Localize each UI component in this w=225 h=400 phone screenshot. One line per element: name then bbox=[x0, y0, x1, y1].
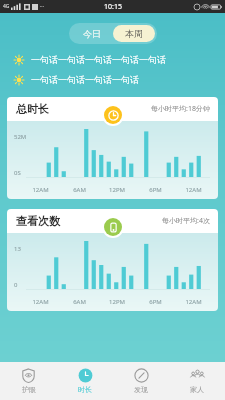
button[interactable]: 查看次数 bbox=[7, 209, 218, 311]
staticText: 12AM bbox=[32, 298, 49, 306]
other: Views bbox=[104, 218, 122, 236]
staticText: 一句话一句话一句话一句话一句话 bbox=[31, 54, 166, 65]
staticText: ··· bbox=[40, 3, 45, 10]
staticText: 一句话一句话一句话一句话 bbox=[31, 74, 139, 85]
button[interactable]: 总时长 bbox=[7, 97, 218, 199]
button[interactable]: 发现 bbox=[113, 362, 169, 400]
button[interactable]: 护眼 bbox=[0, 362, 57, 400]
staticText: 12AM bbox=[185, 186, 202, 194]
staticText: 0S bbox=[14, 169, 21, 177]
staticText: 6AM bbox=[73, 186, 86, 194]
staticText: 时长 bbox=[78, 385, 92, 394]
button[interactable]: 时长 bbox=[57, 362, 113, 400]
staticText: 护眼 bbox=[22, 385, 36, 394]
button[interactable]: 本周 bbox=[113, 25, 155, 42]
staticText: 0 bbox=[14, 281, 18, 289]
staticText: 4G bbox=[3, 3, 10, 10]
other: Duration bbox=[104, 106, 122, 124]
staticText: 52M bbox=[14, 133, 27, 141]
staticText: 查看次数 bbox=[16, 214, 60, 228]
staticText: 每小时平均:18分钟 bbox=[151, 104, 210, 114]
staticText: 发现 bbox=[134, 385, 148, 394]
staticText: 6PM bbox=[149, 298, 162, 306]
staticText: 12AM bbox=[32, 186, 49, 194]
staticText: 6PM bbox=[149, 186, 162, 194]
staticText: 6AM bbox=[73, 298, 86, 306]
staticText: 每小时平均:4次 bbox=[162, 216, 210, 226]
staticText: 总时长 bbox=[16, 102, 49, 116]
staticText: 10:15 bbox=[104, 2, 122, 12]
staticText: 13 bbox=[14, 245, 21, 253]
staticText: 今日 bbox=[83, 28, 101, 39]
staticText: 本周 bbox=[125, 28, 143, 39]
button[interactable]: 今日 bbox=[71, 25, 113, 42]
button[interactable]: 一句话一句话一句话一句话一句话 bbox=[0, 54, 225, 65]
staticText: 12AM bbox=[185, 298, 202, 306]
staticText: 12PM bbox=[109, 186, 125, 194]
button[interactable]: 家人 bbox=[169, 362, 225, 400]
button[interactable]: 一句话一句话一句话一句话 bbox=[0, 74, 225, 85]
staticText: 家人 bbox=[190, 385, 204, 394]
staticText: 12PM bbox=[109, 298, 125, 306]
